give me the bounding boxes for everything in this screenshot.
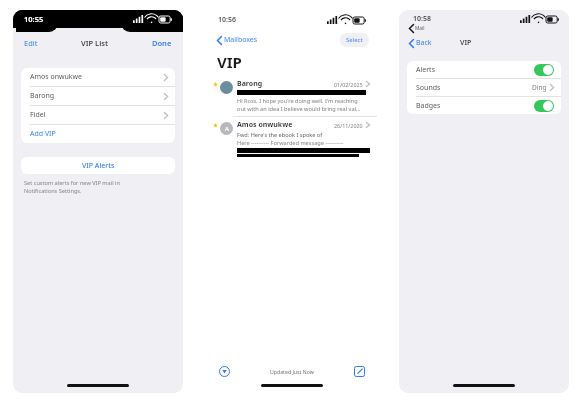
staticText: A [225,125,229,133]
staticText: Mailboxes [224,35,258,45]
staticText: VIP Alerts [82,161,115,171]
staticText: 01/02/2025 [334,81,363,88]
button[interactable]: Mailboxes [215,33,260,47]
staticText: Set custom alerts for new VIP mail in [24,179,120,187]
button[interactable]: Alerts [407,61,561,78]
staticText: Updated Just Now [270,368,314,375]
staticText: Ding [532,83,547,92]
staticText: Barong [30,91,55,101]
staticText: 10:56 [218,15,236,25]
staticText: Notifications Settings. [24,187,82,195]
staticText: Edit [24,38,38,48]
staticText: Back [416,38,432,48]
staticText: Hi Ross, I hope you're doing well. I'm r… [237,97,358,105]
staticText: 10:55 [24,14,44,24]
staticText: Sounds [416,83,441,93]
button[interactable]: Back [407,36,434,50]
staticText: Barong [237,79,263,89]
staticText: Select [346,36,363,44]
button[interactable]: Filter [219,366,230,377]
staticText: VIP [460,38,472,48]
staticText: Fidel [30,110,46,120]
button[interactable]: Sounds [407,79,561,96]
button[interactable]: Edit [22,36,40,50]
button[interactable]: Add VIP [21,125,175,143]
button[interactable]: Badges toggle [534,100,554,112]
button[interactable]: Badges [407,97,561,114]
staticText: Badges [416,101,441,111]
staticText: out with an idea I believe would bring r… [237,105,361,113]
staticText: Fwd: Here's the ebook I spoke of [237,131,323,139]
button[interactable]: VIP Alerts [21,157,175,174]
staticText: VIP [217,52,242,72]
staticText: Amos onwukwe [30,72,83,82]
button[interactable]: Done [150,36,174,50]
staticText: Alerts [416,65,435,75]
button[interactable]: Fidel [21,106,175,124]
staticText: 26/11/2020 [334,122,363,129]
button[interactable]: Amos onwukwe [21,68,175,86]
staticText: VIP List [81,38,109,48]
button[interactable]: Alerts toggle [534,64,554,76]
staticText: Here ---------- Forwarded message ------… [237,139,344,147]
staticText: Done [152,38,172,48]
button[interactable]: Barong [21,87,175,105]
button[interactable]: Compose [354,366,365,377]
button[interactable]: Select [340,33,369,47]
button[interactable]: Barong [207,76,377,116]
staticText: 10:58 [413,14,431,24]
button[interactable]: A [207,117,377,160]
staticText: Amos onwukwe [237,120,293,130]
staticText: Add VIP [30,129,56,139]
staticText: Mail [415,25,425,32]
